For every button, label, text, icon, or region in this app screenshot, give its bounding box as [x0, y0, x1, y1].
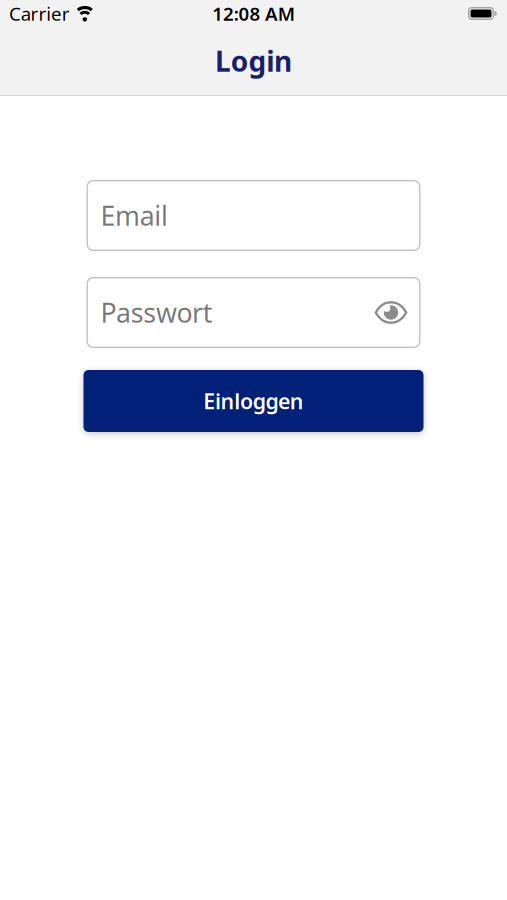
- staticText: Einloggen: [203, 387, 304, 415]
- staticText: Passwort: [100, 295, 213, 330]
- button[interactable]: Einloggen: [83, 370, 423, 432]
- button[interactable]: Email: [86, 180, 420, 251]
- staticText: Login: [215, 42, 292, 80]
- staticText: 12:08 AM: [212, 1, 295, 26]
- staticText: Email: [100, 198, 168, 233]
- staticText: Carrier: [9, 1, 70, 26]
- button[interactable]: Passwort anzeigen: [374, 301, 407, 324]
- button[interactable]: Passwort: [86, 277, 420, 348]
